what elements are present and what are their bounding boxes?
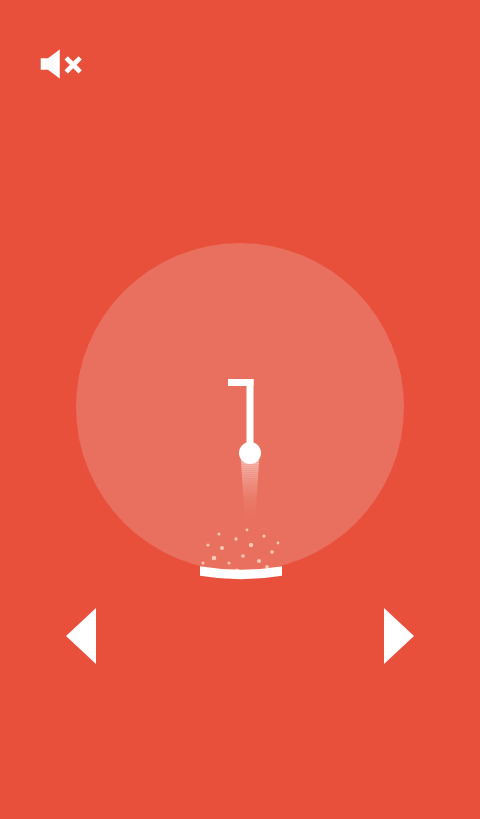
button[interactable]: Sound off: [34, 42, 90, 86]
button[interactable]: Next: [374, 598, 424, 674]
button[interactable]: Play area: [76, 243, 404, 571]
button[interactable]: Previous: [56, 598, 106, 674]
